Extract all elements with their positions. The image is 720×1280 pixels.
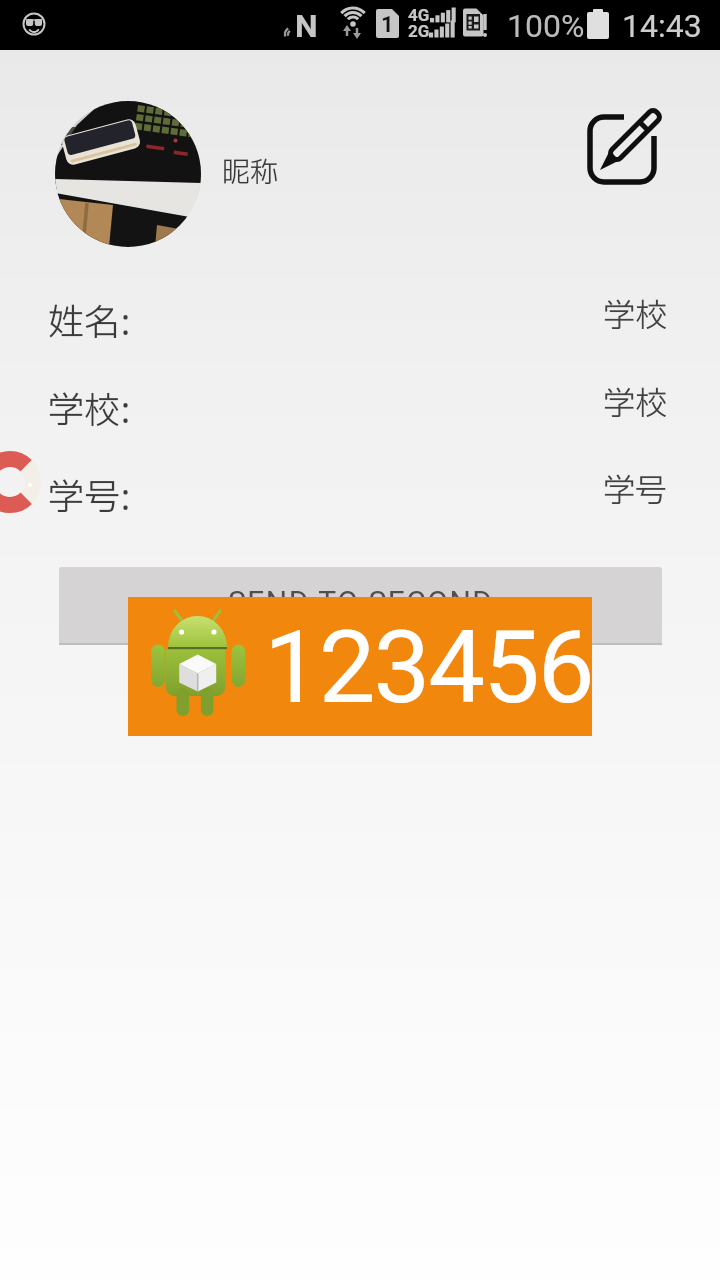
button[interactable] [59, 567, 662, 645]
button[interactable] [55, 101, 201, 247]
staticText: 2G [408, 21, 430, 41]
button[interactable]: 昵称 [222, 152, 372, 192]
staticText: 100% [507, 7, 585, 45]
staticText: 姓名: [48, 297, 132, 339]
staticText: 学校 [603, 293, 668, 335]
staticText: 学号: [48, 472, 132, 514]
staticText: 学号 [603, 468, 668, 510]
staticText: 123456 [264, 608, 592, 726]
button[interactable]: 学校 [400, 381, 668, 423]
button[interactable]: 学号 [400, 468, 668, 510]
staticText: 学校 [603, 381, 668, 423]
staticText: 1 [381, 12, 394, 38]
staticText: 昵称 [222, 152, 279, 192]
button[interactable] [582, 96, 668, 190]
staticText: N [295, 7, 318, 45]
staticText: 4G [408, 5, 430, 25]
staticText: 学校: [48, 385, 132, 427]
staticText: SEND TO SECOND [228, 584, 494, 619]
button[interactable]: 学校 [400, 293, 668, 335]
staticText: 14:43 [622, 7, 702, 45]
